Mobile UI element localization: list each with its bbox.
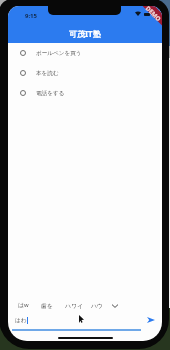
staticText: ハワイ xyxy=(65,302,84,309)
staticText: 歯を xyxy=(41,302,53,309)
staticText: はわ xyxy=(15,317,27,324)
button[interactable]: ハワイ xyxy=(65,302,84,309)
staticText: ボールペンを買う xyxy=(36,50,82,57)
button[interactable]: 歯を xyxy=(41,302,53,309)
staticText: 可茂IT塾 xyxy=(69,28,101,39)
button[interactable]: 本を読む xyxy=(8,63,162,83)
staticText: はw xyxy=(18,301,29,309)
staticText: DEMO xyxy=(144,6,162,23)
button[interactable]: ハウ xyxy=(91,302,104,309)
staticText: ハウ xyxy=(91,302,104,309)
staticText: 本を読む xyxy=(36,70,59,77)
button[interactable]: 電話をする xyxy=(8,83,162,103)
button[interactable]: はw xyxy=(18,301,29,309)
button[interactable]: Expand suggestions xyxy=(110,301,119,310)
staticText: 電話をする xyxy=(36,90,65,97)
button[interactable]: ボールペンを買う xyxy=(8,43,162,63)
button[interactable]: Send xyxy=(145,314,157,326)
staticText: 9:15 xyxy=(25,12,37,20)
